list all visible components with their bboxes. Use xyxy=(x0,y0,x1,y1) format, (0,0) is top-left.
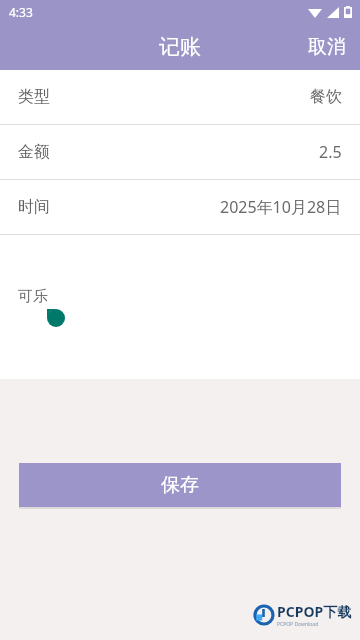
staticText: 记账 xyxy=(159,34,201,60)
button[interactable]: 时间 xyxy=(0,180,360,234)
button[interactable]: 金额 xyxy=(0,125,360,179)
staticText: PCPOP Download xyxy=(277,621,319,628)
button[interactable]: 取消 xyxy=(294,26,360,68)
button[interactable]: 类型 xyxy=(0,70,360,124)
staticText: 取消 xyxy=(308,35,346,59)
other: Text selection handle xyxy=(47,309,65,327)
staticText: PCPOP下载 xyxy=(277,602,352,621)
button[interactable]: 可乐 xyxy=(0,287,360,347)
staticText: 2025年10月28日 xyxy=(220,196,342,218)
staticText: 金额 xyxy=(18,142,50,162)
staticText: 保存 xyxy=(161,473,199,497)
staticText: 类型 xyxy=(18,87,50,107)
staticText: 2.5 xyxy=(319,141,342,163)
staticText: 餐饮 xyxy=(310,87,342,107)
staticText: 可乐 xyxy=(18,287,48,306)
button[interactable]: 保存 xyxy=(19,463,341,507)
staticText: 时间 xyxy=(18,197,50,217)
staticText: 4:33 xyxy=(9,4,33,20)
